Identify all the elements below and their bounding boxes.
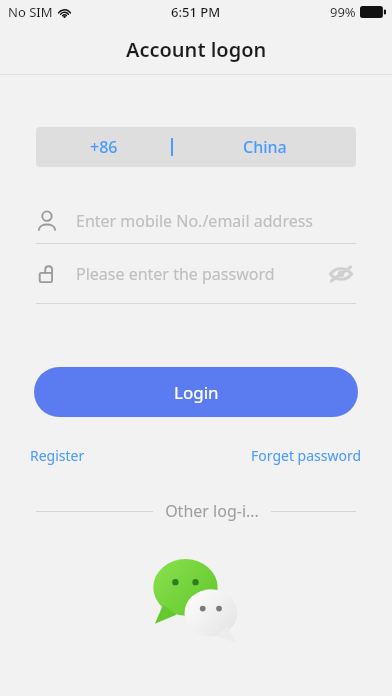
button[interactable]: Please enter the password bbox=[36, 244, 356, 303]
button[interactable]: Show password bbox=[326, 259, 356, 289]
button[interactable]: +86 bbox=[36, 127, 356, 167]
staticText: No SIM bbox=[8, 3, 53, 21]
staticText: Account logon bbox=[126, 36, 267, 63]
staticText: Enter mobile No./email address bbox=[76, 210, 314, 232]
staticText: China bbox=[243, 136, 287, 158]
button[interactable]: Login bbox=[34, 367, 358, 417]
staticText: 99% bbox=[330, 3, 356, 21]
staticText: +86 bbox=[90, 136, 118, 158]
staticText: Login bbox=[174, 381, 219, 404]
staticText: Register bbox=[30, 446, 85, 465]
staticText: Other log-i... bbox=[165, 500, 259, 522]
button[interactable]: Enter mobile No./email address bbox=[36, 199, 356, 244]
button[interactable]: Register bbox=[28, 444, 87, 467]
staticText: 6:51 PM bbox=[171, 3, 221, 21]
button[interactable]: Forget password bbox=[249, 444, 364, 467]
staticText: Forget password bbox=[251, 446, 362, 465]
staticText: Please enter the password bbox=[76, 263, 275, 285]
button[interactable]: Log in with WeChat bbox=[148, 550, 244, 646]
